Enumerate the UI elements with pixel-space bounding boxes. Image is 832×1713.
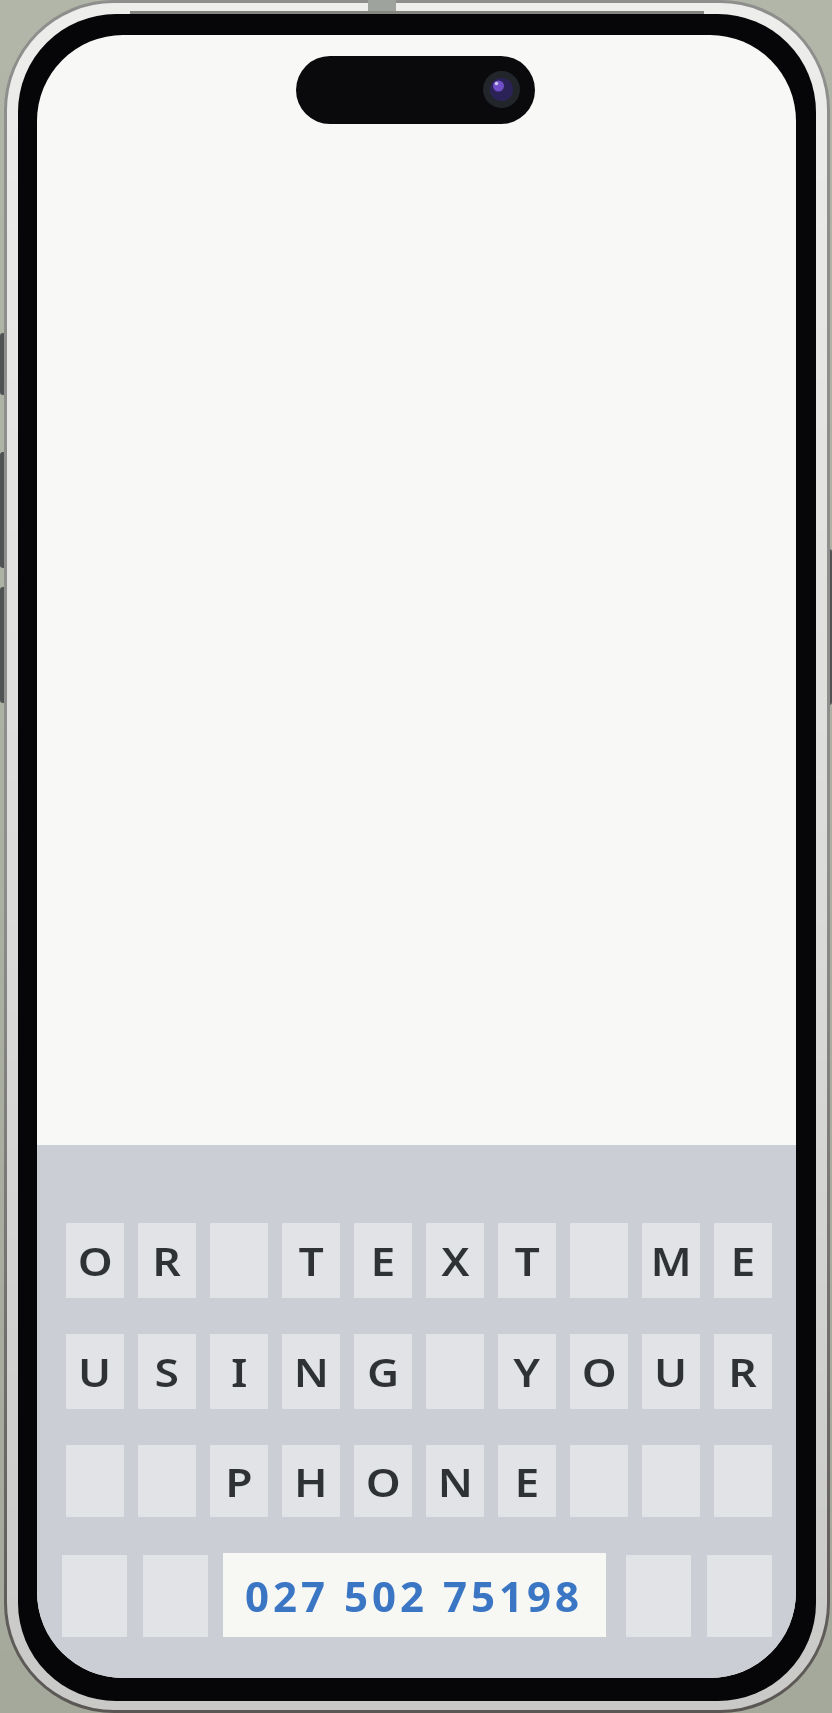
button[interactable]: T bbox=[498, 1223, 556, 1298]
staticText: U bbox=[78, 1345, 112, 1398]
button[interactable]: X bbox=[426, 1223, 484, 1298]
button[interactable]: Y bbox=[498, 1334, 556, 1409]
button[interactable]: 027 502 75198 bbox=[223, 1553, 606, 1637]
staticText: G bbox=[367, 1345, 400, 1398]
staticText: U bbox=[654, 1345, 688, 1398]
staticText: R bbox=[728, 1345, 758, 1398]
button[interactable]: E bbox=[498, 1445, 556, 1517]
staticText: H bbox=[294, 1455, 328, 1508]
staticText: R bbox=[152, 1234, 182, 1287]
button[interactable]: O bbox=[570, 1334, 628, 1409]
staticText: O bbox=[366, 1455, 401, 1508]
button[interactable]: O bbox=[66, 1223, 124, 1298]
button[interactable]: H bbox=[282, 1445, 340, 1517]
button[interactable]: G bbox=[354, 1334, 412, 1409]
staticText: E bbox=[370, 1234, 396, 1287]
staticText: E bbox=[514, 1455, 540, 1508]
staticText: Y bbox=[513, 1345, 541, 1398]
button[interactable]: T bbox=[282, 1223, 340, 1298]
staticText: 027 502 75198 bbox=[245, 1567, 584, 1624]
button[interactable]: S bbox=[138, 1334, 196, 1409]
button[interactable]: U bbox=[66, 1334, 124, 1409]
staticText: O bbox=[582, 1345, 617, 1398]
button[interactable]: P bbox=[210, 1445, 268, 1517]
staticText: S bbox=[154, 1345, 180, 1398]
staticText: O bbox=[78, 1234, 113, 1287]
staticText: T bbox=[298, 1234, 325, 1287]
button[interactable]: N bbox=[426, 1445, 484, 1517]
button[interactable]: M bbox=[642, 1223, 700, 1298]
button[interactable]: R bbox=[714, 1334, 772, 1409]
staticText: I bbox=[231, 1345, 248, 1398]
staticText: N bbox=[294, 1345, 329, 1398]
button[interactable]: I bbox=[210, 1334, 268, 1409]
button[interactable]: N bbox=[282, 1334, 340, 1409]
staticText: N bbox=[438, 1455, 473, 1508]
button[interactable]: R bbox=[138, 1223, 196, 1298]
staticText: M bbox=[650, 1234, 693, 1287]
button[interactable]: U bbox=[642, 1334, 700, 1409]
staticText: X bbox=[441, 1234, 470, 1287]
button[interactable]: E bbox=[714, 1223, 772, 1298]
staticText: E bbox=[730, 1234, 756, 1287]
staticText: T bbox=[514, 1234, 541, 1287]
staticText: P bbox=[225, 1455, 253, 1508]
button[interactable]: E bbox=[354, 1223, 412, 1298]
button[interactable]: O bbox=[354, 1445, 412, 1517]
